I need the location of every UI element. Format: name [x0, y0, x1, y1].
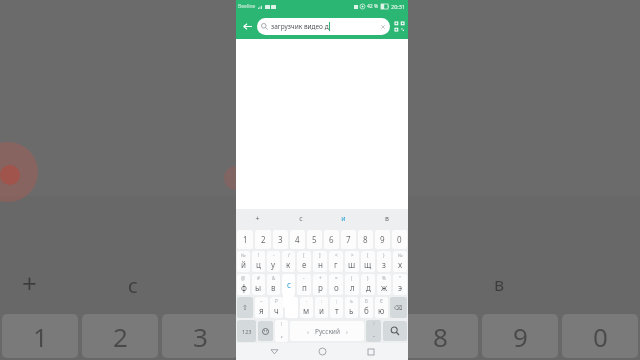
button[interactable]: ] — [313, 251, 327, 272]
staticText: / — [288, 252, 290, 258]
staticText: 9 — [513, 319, 528, 354]
button[interactable]: - — [297, 274, 311, 295]
button[interactable]: с — [282, 274, 295, 295]
staticText: 123 — [242, 328, 252, 335]
button[interactable]: с — [279, 209, 322, 229]
staticText: х — [398, 259, 403, 270]
button[interactable]: Back — [263, 343, 285, 360]
staticText: 9 — [380, 234, 385, 245]
button[interactable]: @ — [237, 274, 250, 295]
button[interactable]: # — [252, 274, 265, 295]
staticText: Русский — [315, 327, 340, 336]
button[interactable]: % — [377, 274, 391, 295]
button[interactable]: / — [282, 251, 295, 272]
staticText: к — [286, 259, 291, 270]
staticText: о — [334, 282, 339, 293]
staticText: г — [334, 259, 338, 270]
staticText: № — [241, 252, 246, 258]
button[interactable]: - — [267, 251, 280, 272]
staticText: ъ — [350, 298, 353, 304]
button[interactable]: 2 — [255, 230, 271, 249]
button[interactable]: в — [365, 209, 408, 229]
button[interactable]: 0 — [392, 230, 407, 249]
staticText: ~ — [260, 298, 263, 304]
button[interactable]: [ — [297, 251, 311, 272]
button[interactable]: ) — [361, 274, 375, 295]
staticText: л — [350, 282, 355, 293]
staticText: п — [302, 282, 307, 293]
button[interactable]: Clear — [380, 24, 386, 30]
staticText: ч — [274, 305, 279, 316]
button[interactable]: ? — [366, 320, 381, 342]
button[interactable]: ! — [252, 251, 265, 272]
button[interactable]: ⇧ — [237, 297, 253, 318]
staticText: 1 — [33, 319, 48, 354]
button[interactable]: 1 — [237, 230, 253, 249]
button[interactable]: Recents — [360, 343, 382, 360]
button[interactable]: 3 — [273, 230, 288, 249]
staticText: 8 — [433, 319, 448, 354]
button[interactable]: > — [345, 251, 359, 272]
button[interactable]: Backspace — [390, 297, 407, 318]
button[interactable]: Emoji — [258, 321, 273, 341]
button[interactable]: загрузчик видео д — [257, 18, 390, 35]
button[interactable]: Search — [383, 321, 407, 341]
staticText: с — [128, 272, 138, 299]
staticText: ! — [258, 252, 260, 258]
button[interactable]: Scan QR code — [393, 20, 405, 32]
button[interactable]: 6 — [324, 230, 339, 249]
staticText: 3 — [278, 234, 283, 245]
staticText: . — [373, 330, 375, 340]
staticText: 1 — [243, 234, 248, 245]
staticText: # — [257, 275, 260, 281]
button[interactable]: 8 — [358, 230, 373, 249]
button[interactable]: P — [270, 297, 283, 318]
button[interactable]: Back — [239, 18, 255, 34]
button[interactable]: ~ — [255, 297, 268, 318]
button[interactable]: : — [315, 297, 328, 318]
staticText: я — [259, 305, 264, 316]
button[interactable]: Home — [311, 343, 333, 360]
staticText: + — [319, 275, 322, 281]
button[interactable]: ( — [345, 274, 359, 295]
staticText: 4 — [273, 319, 288, 354]
button[interactable]: ! — [275, 320, 288, 342]
staticText: [ — [303, 252, 305, 258]
button[interactable]: ‹ — [290, 321, 364, 341]
button[interactable]: = — [329, 274, 343, 295]
button[interactable]: 4 — [290, 230, 305, 249]
button[interactable]: ъ — [345, 297, 358, 318]
button[interactable]: Є — [375, 297, 388, 318]
button[interactable]: ( — [361, 251, 375, 272]
staticText: загрузчик видео д — [271, 22, 329, 31]
button[interactable]: ) — [377, 251, 391, 272]
button[interactable]: + — [236, 209, 279, 229]
button[interactable]: и — [322, 209, 365, 229]
button[interactable]: 5 — [307, 230, 322, 249]
button[interactable]: · — [300, 297, 313, 318]
staticText: 2 — [113, 319, 128, 354]
staticText: ( — [351, 275, 353, 281]
staticText: с — [299, 214, 303, 224]
button[interactable]: № — [393, 251, 407, 272]
button[interactable]: 7 — [341, 230, 356, 249]
staticText: < — [335, 252, 338, 258]
button[interactable]: " — [393, 274, 407, 295]
button[interactable]: 123 — [237, 320, 256, 342]
staticText: с — [287, 279, 291, 290]
button[interactable]: Б — [360, 297, 373, 318]
button[interactable]: № — [237, 251, 250, 272]
button[interactable]: ; — [330, 297, 343, 318]
staticText: · — [306, 298, 308, 304]
staticText: & — [272, 275, 276, 281]
button[interactable]: 9 — [375, 230, 390, 249]
button[interactable]: & — [267, 274, 280, 295]
staticText: й — [241, 259, 246, 270]
staticText: ( — [367, 252, 369, 258]
button[interactable]: < — [329, 251, 343, 272]
staticText: в — [385, 214, 389, 224]
staticText: ⇧ — [242, 304, 248, 312]
staticText: м — [303, 305, 310, 316]
button[interactable]: + — [313, 274, 327, 295]
